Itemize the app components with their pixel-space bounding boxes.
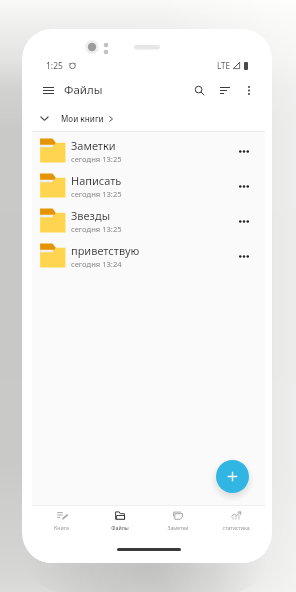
staticText: сегодня 13:25 <box>71 154 122 164</box>
button[interactable]: More options <box>239 80 259 100</box>
button[interactable]: Заметки <box>32 133 265 168</box>
staticText: Звезды <box>71 208 111 223</box>
button[interactable]: Заметки <box>149 511 207 531</box>
button[interactable]: Мои книги <box>61 113 113 124</box>
staticText: приветствую <box>71 243 140 258</box>
staticText: Заметки <box>71 138 116 153</box>
button[interactable]: Collapse <box>35 110 53 126</box>
staticText: Файлы <box>64 82 103 98</box>
button[interactable]: Sort <box>213 79 237 101</box>
button[interactable]: Item menu <box>232 209 256 233</box>
button[interactable]: приветствую <box>32 238 265 273</box>
staticText: Файлы <box>111 524 129 531</box>
staticText: 1:25 <box>46 60 63 72</box>
staticText: Мои книги <box>61 113 104 124</box>
staticText: статистика <box>222 524 250 531</box>
button[interactable]: Item menu <box>232 174 256 198</box>
staticText: LTE <box>217 60 230 71</box>
button[interactable]: Item menu <box>232 139 256 163</box>
staticText: Книга <box>54 524 69 531</box>
staticText: Написать <box>71 173 122 188</box>
button[interactable]: Книга <box>32 511 91 531</box>
staticText: сегодня 13:25 <box>71 224 122 234</box>
button[interactable]: Item menu <box>232 244 256 268</box>
button[interactable]: Звезды <box>32 203 265 238</box>
staticText: сегодня 13:24 <box>71 259 122 269</box>
button[interactable]: Add <box>216 460 249 493</box>
button[interactable]: Файлы <box>91 511 149 531</box>
button[interactable]: статистика <box>207 511 265 531</box>
staticText: Заметки <box>167 524 189 531</box>
button[interactable]: Menu <box>36 79 60 101</box>
staticText: сегодня 13:25 <box>71 189 122 199</box>
button[interactable]: Написать <box>32 168 265 203</box>
button[interactable]: Search <box>187 79 211 101</box>
